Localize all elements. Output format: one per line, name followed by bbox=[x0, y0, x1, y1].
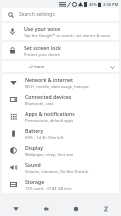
staticText: Use your voice bbox=[24, 25, 61, 32]
button[interactable]: Navigate down bbox=[0, 202, 31, 216]
button[interactable]: Network & internet bbox=[2, 74, 119, 91]
staticText: 3:06 PM bbox=[103, 2, 119, 7]
staticText: Volume, vibration, Do Not Disturb bbox=[25, 169, 89, 174]
button[interactable]: Apps & notifications bbox=[2, 108, 119, 125]
staticText: Wi-Fi, mobile, data usage, hotspot bbox=[25, 84, 89, 89]
staticText: Search settings bbox=[19, 11, 55, 18]
button[interactable]: Use your voice bbox=[2, 23, 119, 40]
staticText: Storage bbox=[25, 178, 45, 185]
staticText: 72% used - 37.84 GB free bbox=[25, 186, 72, 191]
staticText: Display bbox=[25, 144, 44, 151]
staticText: Permissions, default apps bbox=[25, 118, 74, 123]
button[interactable]: Recents bbox=[91, 202, 121, 216]
staticText: Set screen lock bbox=[24, 44, 61, 51]
button[interactable]: Sound bbox=[2, 159, 119, 176]
staticText: 49% bbox=[89, 2, 97, 7]
button[interactable]: Connected devices bbox=[2, 91, 119, 108]
staticText: Wallpaper, sleep, font size bbox=[25, 152, 74, 157]
staticText: Connected devices bbox=[25, 93, 72, 100]
button[interactable]: Display bbox=[2, 142, 119, 159]
staticText: Network & internet bbox=[25, 76, 73, 83]
staticText: Protect your device bbox=[24, 52, 61, 57]
button[interactable]: +2 more bbox=[2, 61, 119, 72]
staticText: Battery bbox=[25, 127, 44, 134]
button[interactable]: Search settings bbox=[2, 8, 119, 21]
staticText: Apps & notifications bbox=[25, 110, 75, 117]
staticText: 69% - 1d 3h 39m left bbox=[25, 135, 64, 140]
button[interactable]: Storage bbox=[2, 176, 119, 193]
button[interactable]: Battery bbox=[2, 125, 119, 142]
button[interactable]: Back bbox=[31, 202, 61, 216]
button[interactable]: Set screen lock bbox=[2, 42, 119, 59]
other: Expand suggestions bbox=[108, 63, 116, 71]
button[interactable]: Home bbox=[61, 202, 91, 216]
staticText: Tap the Google™ to search, set alarms & … bbox=[24, 33, 111, 38]
staticText: Sound bbox=[25, 161, 41, 168]
staticText: +2 more bbox=[28, 64, 45, 70]
staticText: Bluetooth, cast bbox=[25, 101, 54, 106]
